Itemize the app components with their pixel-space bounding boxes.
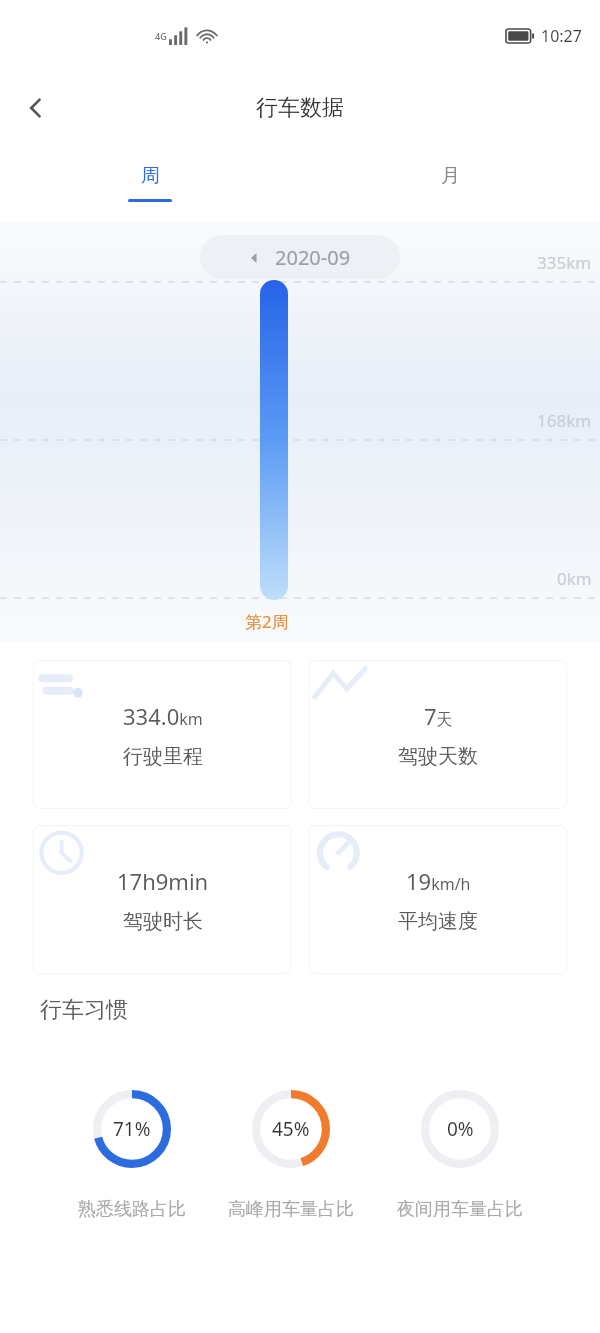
button[interactable]: 334.0km (33, 660, 292, 809)
staticText: 第2周 (245, 610, 289, 633)
button[interactable]: 周 (0, 144, 300, 222)
button[interactable]: 19km/h (308, 825, 567, 974)
button[interactable]: 17h9min (33, 825, 292, 974)
staticText: 168km (537, 409, 592, 432)
staticText: 行驶里程 (123, 744, 203, 769)
staticText: 335km (537, 251, 592, 274)
staticText: 夜间用车量占比 (397, 1198, 523, 1221)
staticText: 4G (155, 30, 167, 42)
button[interactable]: 71% (78, 1090, 186, 1221)
staticText: 334.0km (123, 701, 203, 731)
staticText: 高峰用车量占比 (228, 1198, 354, 1221)
staticText: 10:27 (541, 25, 582, 47)
button[interactable]: 0% (397, 1090, 523, 1221)
staticText: 周 (141, 164, 160, 188)
staticText: 45% (272, 1116, 310, 1142)
staticText: 月 (441, 164, 460, 188)
button[interactable]: Back (10, 82, 62, 134)
staticText: 行车习惯 (40, 996, 128, 1024)
staticText: 19km/h (406, 866, 471, 896)
staticText: 0km (557, 567, 592, 590)
staticText: 熟悉线路占比 (78, 1198, 186, 1221)
staticText: 17h9min (117, 866, 209, 896)
button[interactable]: 2020-09 (200, 235, 400, 279)
staticText: 驾驶时长 (123, 909, 203, 934)
staticText: 行车数据 (256, 94, 344, 122)
button[interactable]: 45% (228, 1090, 354, 1221)
staticText: 0% (447, 1116, 474, 1142)
button[interactable]: 7天 (308, 660, 567, 809)
staticText: 驾驶天数 (398, 744, 478, 769)
staticText: 2020-09 (275, 244, 351, 271)
staticText: 71% (113, 1116, 151, 1142)
staticText: 平均速度 (398, 909, 478, 934)
staticText: 7天 (424, 701, 453, 731)
button[interactable]: 月 (300, 144, 600, 222)
